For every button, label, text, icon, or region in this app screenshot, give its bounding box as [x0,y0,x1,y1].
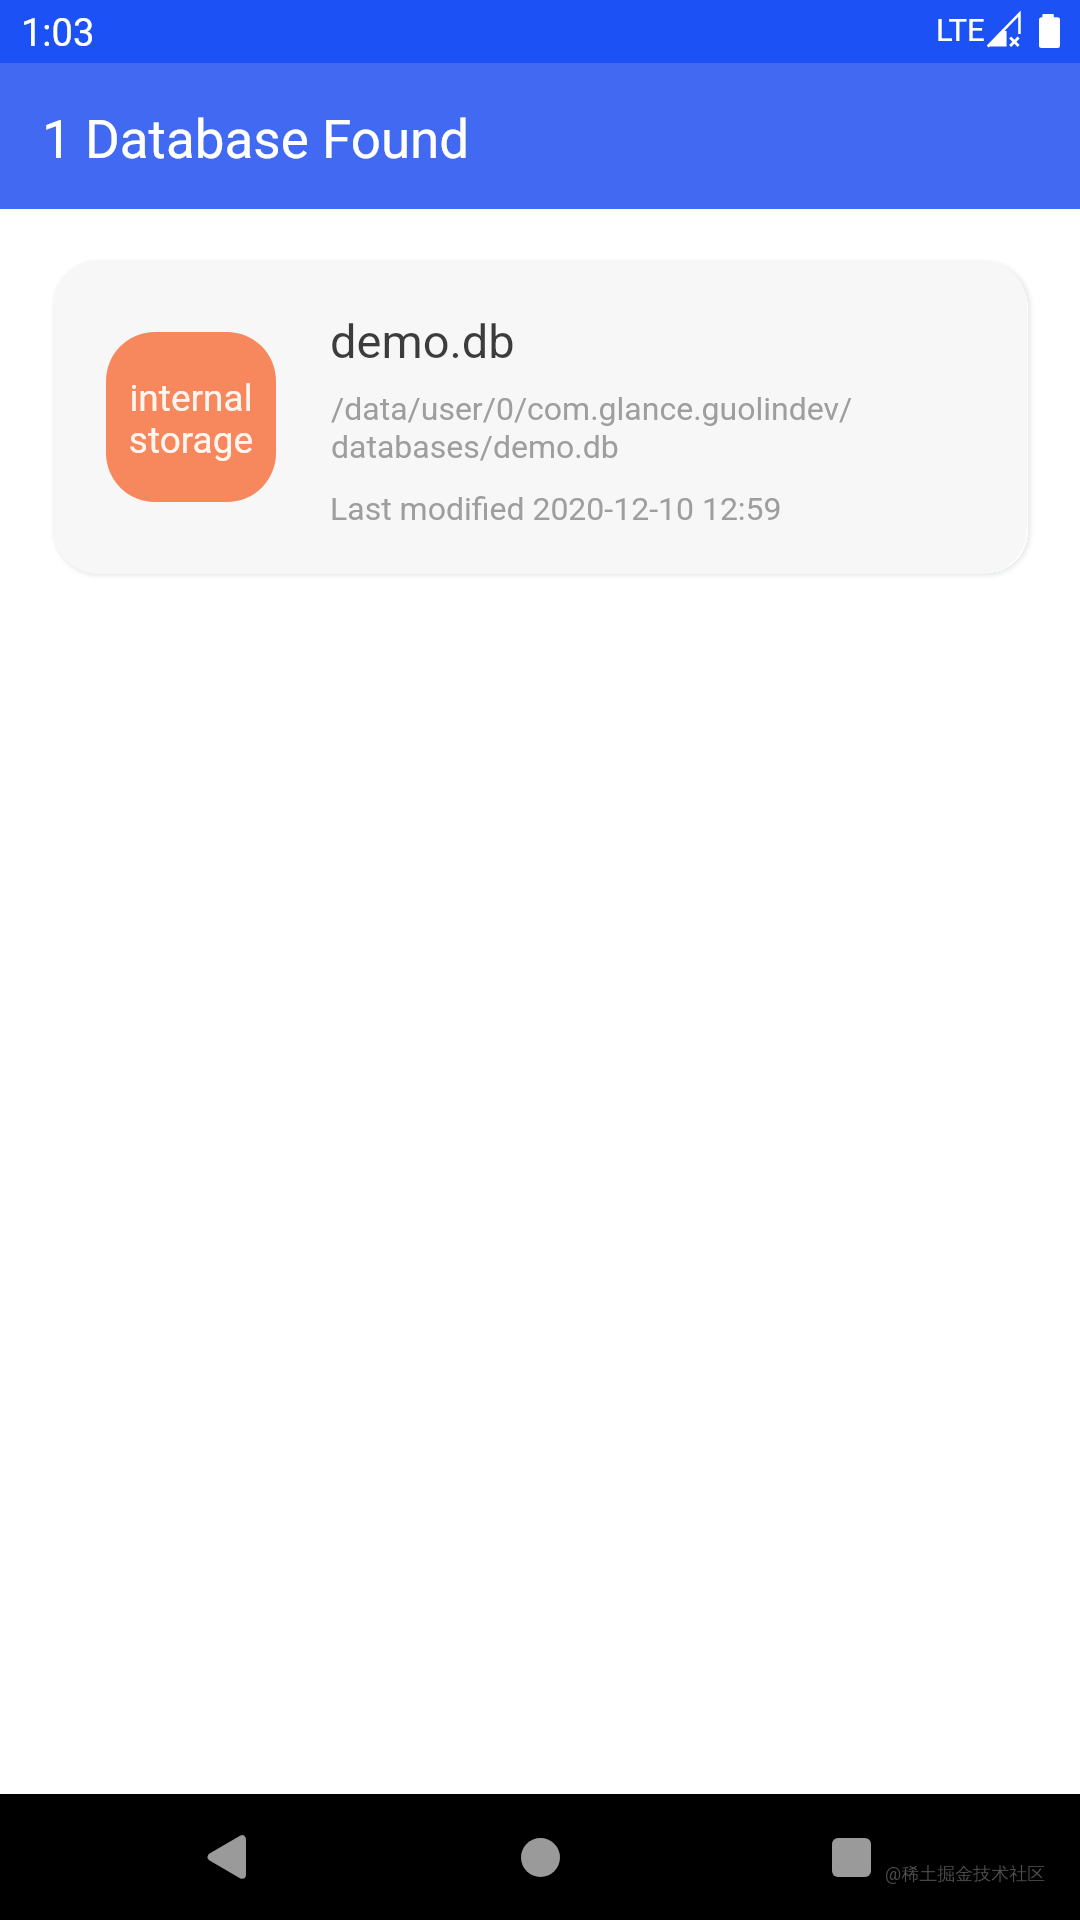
staticText: LTE [936,12,985,48]
button[interactable]: Recents [816,1822,886,1892]
staticText: /data/user/0/com.glance.guolindev/databa… [331,390,876,466]
staticText: @稀土掘金技术社区 [885,1863,1046,1886]
staticText: 1:03 [21,11,95,56]
staticText: internal storage [127,377,255,462]
button[interactable]: Home [505,1822,575,1892]
staticText: 1 Database Found [42,109,470,171]
button[interactable]: Back [190,1822,260,1892]
button[interactable]: internal storage [53,260,1027,574]
staticText: Last modified 2020-12-10 12:59 [330,490,782,528]
staticText: demo.db [330,314,515,369]
